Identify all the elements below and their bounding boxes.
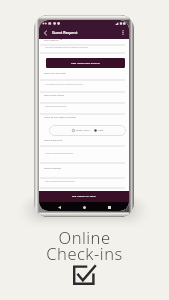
staticText: As it appears on your passport or ID car… [45, 83, 83, 86]
staticText: PRE CHECK-IN NOW [72, 195, 96, 198]
staticText: Online [58, 226, 111, 248]
staticText: Guest Request [52, 30, 78, 35]
staticText: Later [98, 129, 104, 132]
staticText: Room preference [44, 139, 63, 142]
button[interactable]: Home [79, 202, 89, 211]
staticText: Add your passport photo to speed up chec… [45, 46, 88, 49]
button[interactable]: More options [119, 29, 126, 36]
staticText: When do you expect to arrive? [44, 116, 76, 119]
staticText: Today, Mar 6 [76, 129, 90, 132]
button[interactable]: PRE CHECK-IN NOW [39, 191, 129, 202]
staticText: Check-ins [46, 242, 123, 264]
button[interactable]: Back [41, 29, 49, 37]
button[interactable]: Today, Mar 6 [49, 125, 126, 136]
staticText: Enter your full name [44, 72, 66, 75]
staticText: Pre Check-in [44, 38, 59, 41]
staticText: Choose a preferred room type [45, 152, 73, 155]
staticText: Tell us about anything you need [45, 180, 75, 183]
staticText: Special requests [44, 167, 62, 170]
staticText: Basic travel contact [44, 94, 65, 97]
button[interactable]: Back [54, 202, 64, 211]
button[interactable]: ADD PASSPORT PHOTO [46, 58, 125, 68]
staticText: ADD PASSPORT PHOTO [71, 62, 100, 65]
button[interactable]: Recent apps [104, 202, 114, 211]
staticText: Contact phone number [45, 105, 67, 108]
